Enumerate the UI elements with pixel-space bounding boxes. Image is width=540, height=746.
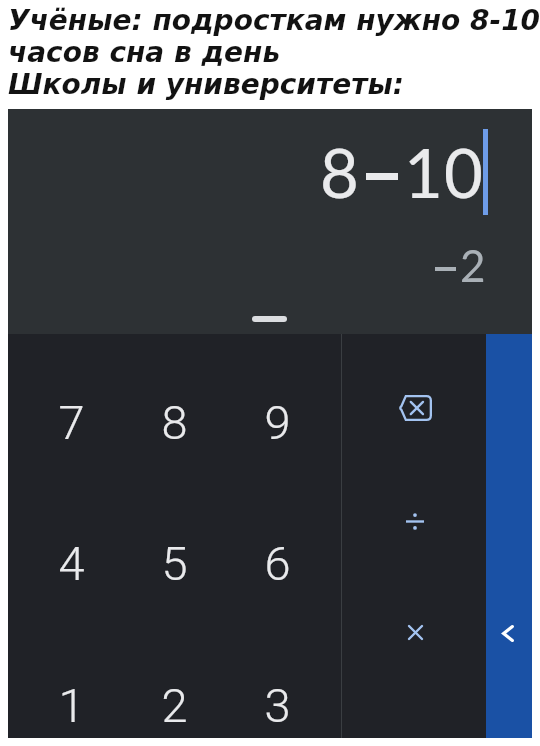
staticText: 1 <box>404 132 443 212</box>
button[interactable]: 5 <box>123 528 226 599</box>
staticText: 5 <box>161 536 188 591</box>
button[interactable]: Resize display <box>252 316 287 322</box>
staticText: часов сна в день <box>8 36 281 69</box>
staticText: 4 <box>58 536 85 591</box>
button[interactable]: Multiply <box>358 576 472 689</box>
button[interactable]: 2 <box>123 670 226 741</box>
button[interactable]: 7 <box>20 387 123 458</box>
staticText: 2 <box>161 678 188 733</box>
staticText: 8 <box>161 395 188 450</box>
staticText: 8 <box>320 132 359 212</box>
staticText: 2 <box>460 239 486 292</box>
button[interactable]: Open history panel <box>486 334 532 738</box>
staticText: 7 <box>58 395 85 450</box>
button[interactable]: 9 <box>226 387 329 458</box>
button[interactable]: Divide <box>358 465 472 578</box>
staticText: 9 <box>264 395 291 450</box>
button[interactable]: Backspace <box>358 351 472 464</box>
button[interactable]: 6 <box>226 528 329 599</box>
staticText: Учёные: подросткам нужно 8-10 <box>8 4 540 37</box>
button[interactable]: 4 <box>20 528 123 599</box>
button[interactable]: 3 <box>226 670 329 741</box>
staticText: 6 <box>264 536 291 591</box>
staticText: Школы и университеты: <box>8 68 404 101</box>
button[interactable]: 8 <box>123 387 226 458</box>
staticText: 0 <box>444 132 483 212</box>
button[interactable]: 1 <box>20 670 123 741</box>
staticText: 1 <box>58 678 85 733</box>
staticText: 3 <box>264 678 291 733</box>
